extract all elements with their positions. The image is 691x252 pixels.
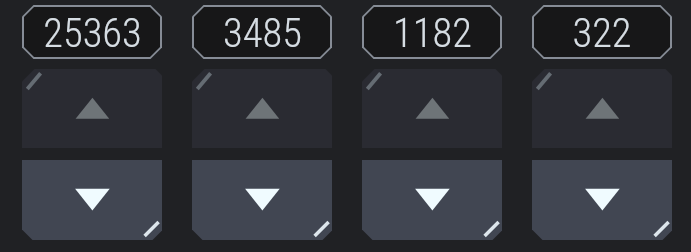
staticText: 322 — [572, 9, 632, 56]
staticText: 1182 — [393, 9, 472, 56]
staticText: 25363 — [43, 9, 142, 56]
button[interactable]: Decrease — [362, 160, 502, 240]
button[interactable]: Decrease — [192, 160, 332, 240]
button[interactable]: Increase — [22, 69, 162, 148]
button[interactable]: 3485 — [194, 7, 330, 57]
button[interactable]: 25363 — [24, 7, 160, 57]
button[interactable]: Increase — [532, 69, 672, 148]
button[interactable]: 1182 — [364, 7, 500, 57]
button[interactable]: Increase — [362, 69, 502, 148]
staticText: 3485 — [223, 9, 302, 56]
button[interactable]: Decrease — [22, 160, 162, 240]
button[interactable]: 322 — [534, 7, 670, 57]
button[interactable]: Decrease — [532, 160, 672, 240]
button[interactable]: Increase — [192, 69, 332, 148]
